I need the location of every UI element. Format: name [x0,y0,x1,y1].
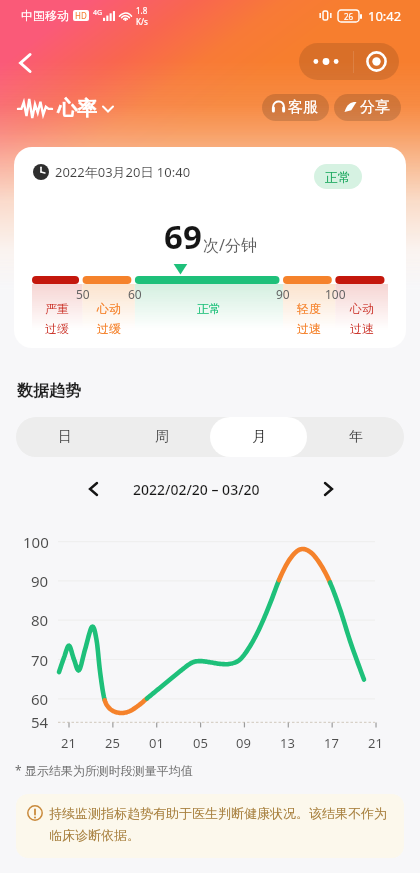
staticText: 过缓 [45,321,69,336]
staticText: 60 [128,286,142,302]
staticText: 54 [31,712,49,732]
staticText: 分享 [360,98,390,117]
staticText: 客服 [288,98,318,117]
staticText: 周 [155,428,169,446]
staticText: 过速 [350,321,374,336]
staticText: 90 [31,571,49,591]
staticText: HD [75,10,87,21]
staticText: 90 [276,286,290,302]
staticText: 年 [349,428,363,446]
button[interactable]: 年 [307,417,404,457]
staticText: 持续监测指标趋势有助于医生判断健康状况。该结果不作为临床诊断依据。 [49,805,394,844]
staticText: 50 [76,286,90,302]
staticText: 09 [236,734,251,752]
staticText: * 显示结果为所测时段测量平均值 [15,762,193,778]
staticText: 2022/02/20 – 03/20 [133,480,260,499]
staticText: 严重 [45,301,69,316]
staticText: 过缓 [97,321,121,336]
staticText: 1.8 [136,5,148,16]
staticText: 轻度 [297,301,321,316]
staticText: 21 [368,734,383,752]
staticText: 80 [31,610,49,630]
staticText: 26 [344,11,354,22]
staticText: 13 [280,734,295,752]
staticText: 正常 [197,301,221,316]
staticText: 17 [324,734,339,752]
staticText: 70 [31,650,49,670]
staticText: 月 [252,428,266,446]
staticText: 100 [23,532,49,552]
button[interactable]: Next period [312,473,344,505]
staticText: 4G [93,8,103,18]
button[interactable]: 客服 [262,94,329,121]
button[interactable]: 日 [16,417,113,457]
button[interactable]: 分享 [334,94,401,121]
staticText: 100 [325,286,346,302]
button[interactable]: More options [299,43,399,80]
staticText: 25 [105,734,120,752]
staticText: 21 [61,734,76,752]
button[interactable]: Back [6,44,44,82]
button[interactable]: 周 [113,417,210,457]
staticText: 心动 [350,301,374,316]
staticText: 心率 [57,96,97,121]
staticText: 心动 [97,301,121,316]
staticText: 中国移动 [21,8,69,23]
button[interactable]: 月 [210,417,307,457]
staticText: 69 [164,214,202,259]
staticText: 正常 [325,169,351,185]
staticText: 10:42 [368,7,402,25]
staticText: 2022年03月20日 10:40 [55,163,191,181]
staticText: 05 [193,734,208,752]
staticText: 日 [58,428,72,446]
staticText: 过速 [297,321,321,336]
button[interactable]: Previous period [77,473,109,505]
staticText: 60 [31,689,49,709]
staticText: 次/分钟 [203,234,257,256]
staticText: 01 [149,734,164,752]
staticText: K/s [136,16,148,27]
staticText: 数据趋势 [17,381,81,401]
